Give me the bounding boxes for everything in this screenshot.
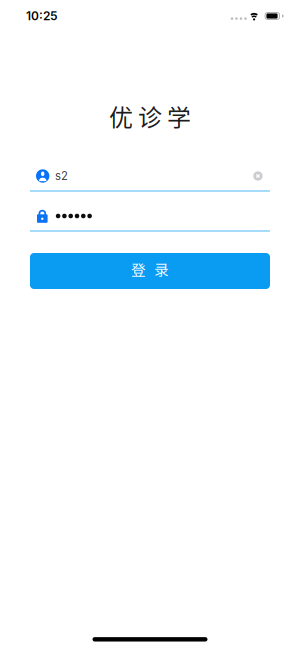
button[interactable]: 登 bbox=[30, 253, 270, 289]
staticText: 登 bbox=[131, 259, 146, 280]
staticText: 录 bbox=[154, 259, 169, 280]
staticText: 10:25 bbox=[26, 9, 58, 23]
staticText: 学 bbox=[167, 99, 191, 133]
staticText: 诊 bbox=[138, 99, 162, 133]
button[interactable]: Clear text bbox=[248, 166, 270, 186]
staticText: 优 bbox=[109, 99, 133, 133]
staticText: s2 bbox=[55, 169, 68, 183]
